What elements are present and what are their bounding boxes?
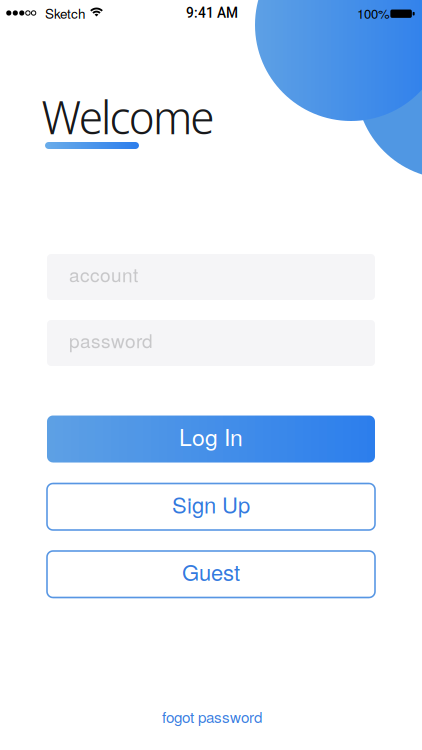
- button[interactable]: Guest: [47, 551, 375, 597]
- staticText: Sketch: [45, 3, 85, 23]
- staticText: Guest: [182, 556, 240, 587]
- staticText: fogot password: [162, 705, 262, 727]
- staticText: Welcome: [41, 84, 214, 148]
- staticText: 100%: [357, 4, 390, 22]
- staticText: account: [69, 260, 138, 288]
- button[interactable]: Log In: [47, 415, 375, 462]
- staticText: password: [69, 326, 153, 354]
- staticText: Sign Up: [172, 488, 250, 520]
- staticText: Log In: [179, 420, 243, 453]
- button[interactable]: Sign Up: [47, 483, 375, 530]
- button[interactable]: fogot password: [162, 705, 262, 727]
- staticText: 9:41 AM: [186, 5, 238, 21]
